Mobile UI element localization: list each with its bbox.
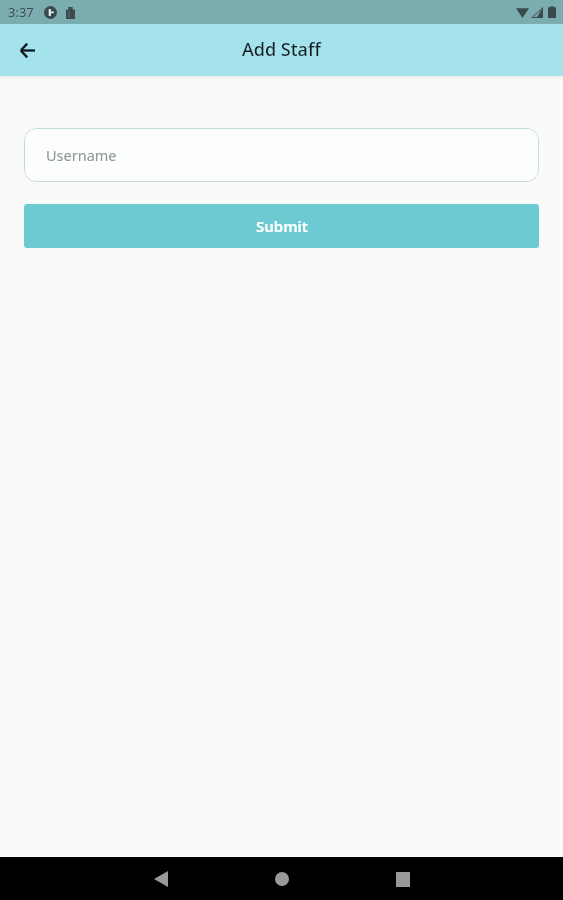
- button[interactable]: Home: [261, 858, 303, 900]
- staticText: Add Staff: [242, 37, 321, 62]
- button[interactable]: Back: [140, 858, 182, 900]
- staticText: 3:37: [8, 3, 34, 21]
- button[interactable]: Back: [7, 30, 47, 70]
- staticText: Username: [46, 145, 117, 165]
- staticText: Submit: [256, 216, 308, 236]
- button[interactable]: Username: [24, 128, 539, 182]
- button[interactable]: Submit: [24, 204, 539, 248]
- button[interactable]: Recent apps: [382, 858, 424, 900]
